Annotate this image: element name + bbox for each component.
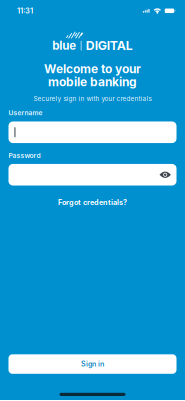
button[interactable]: Forgot credentials? [58,198,127,207]
staticText: Sign in [81,360,104,368]
staticText: DIGITAL [86,38,133,53]
button[interactable]: Sign in [8,354,176,374]
staticText: Securely sign in with your credentials [33,95,151,102]
button[interactable]: Show password [159,171,176,178]
staticText: Forgot credentials? [58,198,127,207]
staticText: blue [52,39,76,53]
staticText: 11:31 [17,6,33,15]
staticText: mobile banking [48,75,137,89]
staticText: Username [8,109,42,117]
staticText: Password [8,152,40,160]
staticText: Welcome to your [44,62,141,76]
